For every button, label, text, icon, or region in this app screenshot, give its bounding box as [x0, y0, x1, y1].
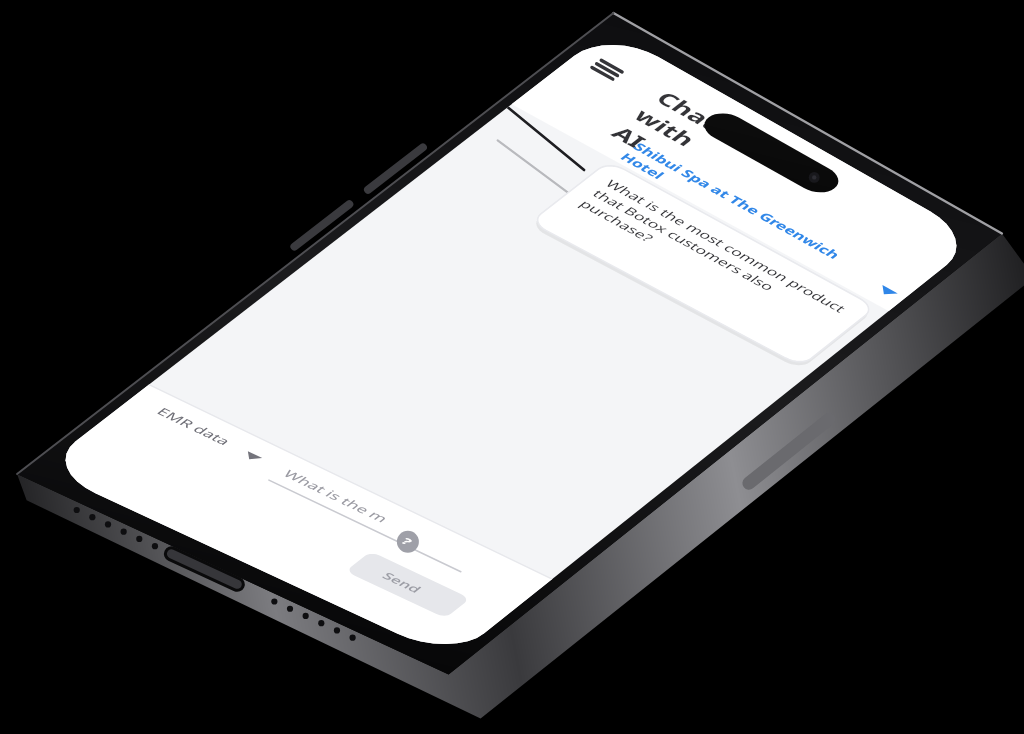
button[interactable]: Open navigation menu	[603, 56, 612, 87]
button[interactable]	[371, 551, 445, 618]
button[interactable]: EMR data source selector	[163, 400, 256, 468]
button[interactable]	[290, 461, 459, 576]
button[interactable]: Select location: Shibui Spa at The Green…	[644, 133, 890, 303]
button[interactable]	[609, 161, 801, 366]
